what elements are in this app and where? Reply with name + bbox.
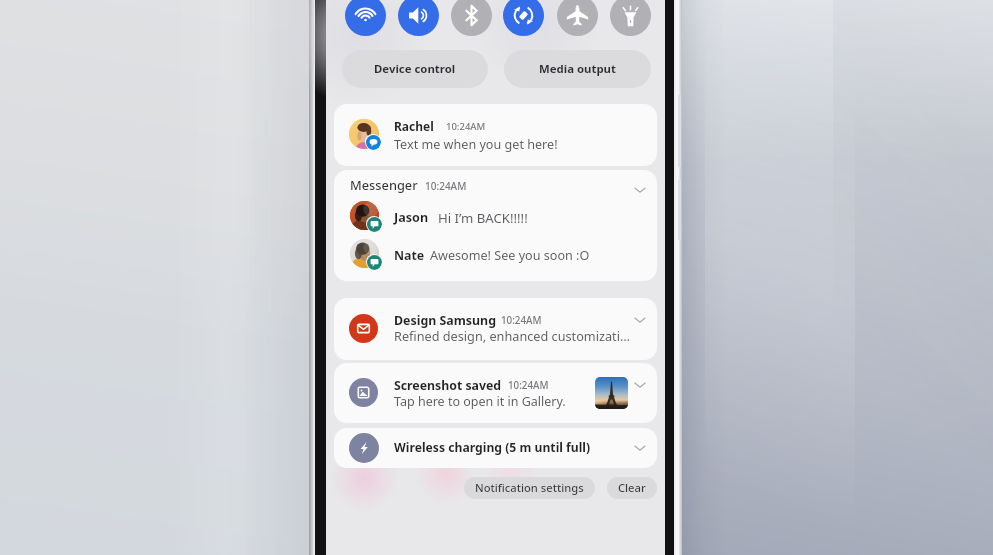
staticText: Screenshot saved [394, 377, 502, 394]
staticText: Rachel [394, 118, 434, 134]
staticText: 10:24AM [446, 120, 486, 133]
button[interactable]: Sound [398, 0, 439, 36]
staticText: Refined design, enhanced customizati… [394, 327, 630, 344]
staticText: Design Samsung [394, 312, 496, 329]
button[interactable]: Messenger [334, 170, 657, 281]
button[interactable]: Airplane mode [557, 0, 598, 36]
button[interactable]: Device control [342, 50, 488, 88]
staticText: Media output [539, 61, 616, 77]
button[interactable]: Expand [632, 440, 648, 456]
button[interactable]: Screenshot saved [334, 363, 657, 423]
staticText: Jason [394, 209, 429, 226]
staticText: Messenger [350, 176, 418, 193]
button[interactable]: Design Samsung [334, 298, 657, 360]
staticText: Text me when you get here! [394, 136, 558, 153]
button[interactable]: Bluetooth [451, 0, 492, 36]
staticText: Wireless charging (5 m until full) [394, 439, 591, 456]
staticText: Notification settings [475, 480, 584, 495]
button[interactable]: Clear [607, 477, 657, 499]
button[interactable]: Wireless charging (5 m until full) [334, 428, 657, 468]
button[interactable]: Expand [632, 312, 648, 328]
button[interactable]: Rachel [334, 104, 657, 166]
button[interactable]: Expand [632, 377, 648, 393]
staticText: Device control [374, 61, 456, 77]
staticText: 10:24AM [508, 379, 549, 392]
staticText: 10:24AM [425, 179, 467, 193]
button[interactable]: Wi-Fi [345, 0, 386, 36]
button[interactable]: Media output [504, 50, 651, 88]
button[interactable]: Flashlight [610, 0, 651, 36]
staticText: Hi I’m BACK!!!!! [438, 209, 528, 227]
staticText: Awesome! See you soon :O [430, 247, 590, 264]
staticText: 10:24AM [501, 314, 542, 327]
button[interactable]: Auto rotate [503, 0, 544, 36]
button[interactable]: Notification settings [464, 477, 595, 499]
staticText: Clear [618, 480, 646, 495]
staticText: Nate [394, 247, 425, 264]
button[interactable]: Expand [632, 182, 648, 198]
staticText: Tap here to open it in Gallery. [394, 393, 566, 410]
